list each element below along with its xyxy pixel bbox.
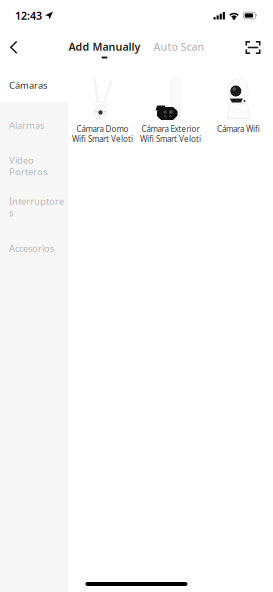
button[interactable]: Alarmas [0, 102, 68, 143]
staticText: Cámaras [9, 79, 47, 91]
staticText: Wifi Smart Veloti [140, 134, 201, 144]
staticText: Cámara Exterior [141, 124, 199, 134]
staticText: Accesorios [9, 242, 54, 254]
staticText: Add Manually [68, 39, 140, 54]
button[interactable]: Add Manually [68, 40, 140, 58]
button[interactable]: Auto Scan [153, 40, 204, 58]
button[interactable]: Scan QR code [239, 32, 267, 62]
staticText: 12:43 [15, 8, 42, 23]
button[interactable]: Interruptore [0, 184, 68, 225]
staticText: Video [9, 154, 34, 166]
button[interactable]: Cámara Wifi [204, 72, 272, 134]
button[interactable]: Cámara Exterior [136, 72, 204, 144]
staticText: Porteros [9, 165, 47, 178]
button[interactable]: Accesorios [0, 225, 68, 266]
staticText: Auto Scan [153, 39, 204, 54]
staticText: Wifi Smart Veloti [72, 134, 133, 144]
staticText: Cámara Wifi [217, 124, 260, 134]
staticText: Cámara Domo [76, 124, 128, 134]
staticText: s [9, 206, 13, 219]
button[interactable]: Cámara Domo [68, 72, 136, 144]
staticText: Interruptore [9, 195, 64, 207]
staticText: Alarmas [9, 119, 44, 131]
button[interactable]: Back [0, 32, 28, 62]
button[interactable]: Cámaras [0, 63, 68, 102]
button[interactable]: Video [0, 143, 68, 184]
